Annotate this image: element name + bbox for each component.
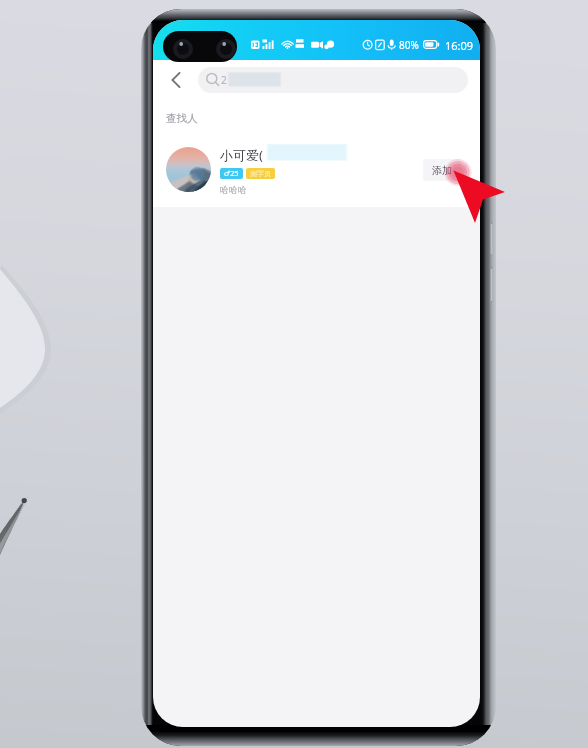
button[interactable]: 小可爱(	[153, 132, 480, 207]
staticText: 添加	[432, 164, 452, 177]
staticText: 小可爱(	[220, 146, 263, 164]
staticText: 测字员	[250, 169, 271, 178]
staticText: 哈哈哈	[220, 184, 247, 195]
button[interactable]: Back	[153, 60, 198, 100]
staticText: 80%	[399, 38, 419, 52]
staticText: ♂25	[224, 169, 239, 179]
staticText: 2	[221, 73, 227, 87]
button[interactable]: 添加	[423, 159, 461, 181]
button[interactable]: 2	[198, 67, 468, 93]
staticText: 16:09	[445, 38, 474, 53]
staticText: 查找人	[166, 112, 198, 125]
